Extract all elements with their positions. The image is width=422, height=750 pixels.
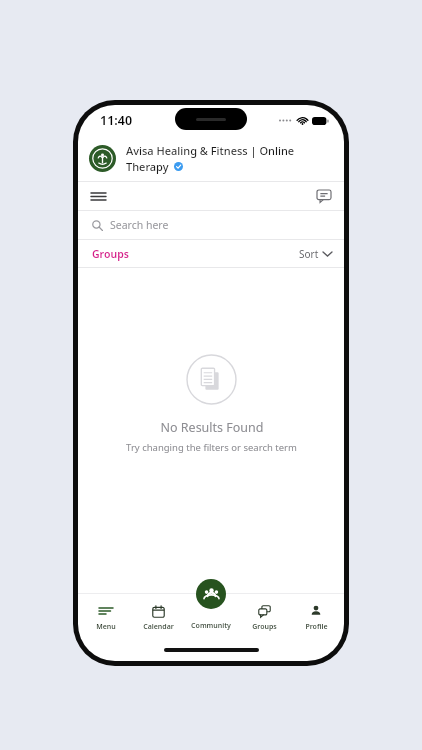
staticText: Groups bbox=[252, 622, 277, 632]
staticText: Sort bbox=[299, 247, 319, 261]
button[interactable]: Menu bbox=[81, 599, 131, 636]
button[interactable]: Sort bbox=[291, 243, 344, 265]
button[interactable]: Menu bbox=[78, 182, 118, 210]
staticText: Calendar bbox=[143, 622, 174, 632]
staticText: Therapy bbox=[126, 159, 169, 174]
button[interactable]: Community bbox=[196, 579, 226, 609]
button[interactable]: Groups bbox=[239, 599, 289, 636]
staticText: Avisa Healing & Fitness | Online bbox=[126, 143, 295, 158]
button[interactable]: Search here bbox=[78, 211, 344, 239]
button[interactable]: Groups bbox=[78, 247, 135, 261]
button[interactable]: Avisa Healing & Fitness | Online bbox=[78, 135, 344, 181]
staticText: Profile bbox=[305, 622, 328, 632]
staticText: 11:40 bbox=[100, 112, 133, 129]
button[interactable]: Profile bbox=[291, 599, 341, 636]
staticText: Community bbox=[191, 621, 231, 631]
button[interactable]: Calendar bbox=[133, 599, 183, 636]
staticText: Try changing the filters or search term bbox=[126, 441, 297, 454]
staticText: Groups bbox=[92, 247, 129, 261]
button[interactable]: Community bbox=[186, 599, 236, 635]
staticText: No Results Found bbox=[160, 419, 264, 436]
staticText: Menu bbox=[96, 622, 116, 632]
staticText: Search here bbox=[110, 218, 169, 232]
button[interactable]: Messages bbox=[304, 182, 344, 210]
